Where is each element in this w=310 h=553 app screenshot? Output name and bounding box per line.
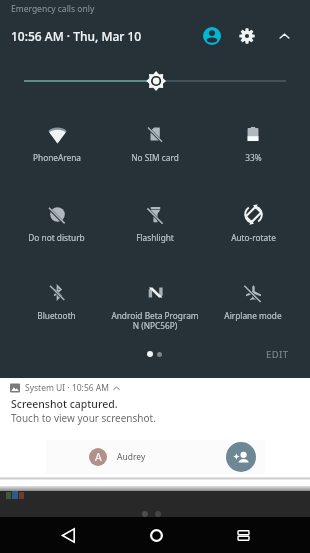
staticText: No SIM card	[131, 152, 179, 163]
button[interactable]: User account	[200, 24, 224, 48]
staticText: System UI · 10:56 AM	[25, 382, 109, 394]
staticText: Emergency calls only	[11, 3, 95, 15]
staticText: Do not disturb	[28, 232, 85, 243]
button[interactable]: Back	[46, 517, 90, 553]
button[interactable]: Recent apps	[221, 517, 265, 553]
staticText: Android Beta Program N (NPC56P)	[111, 310, 199, 332]
button[interactable]: Bluetooth	[7, 268, 106, 330]
staticText: Auto-rotate	[231, 232, 276, 243]
button[interactable]: Android Beta Program N (NPC56P)	[106, 268, 204, 330]
staticText: 10:56 AM · Thu, Mar 10	[11, 28, 142, 44]
button[interactable]: Add guest	[226, 442, 256, 472]
staticText: Touch to view your screenshot.	[11, 411, 156, 425]
button[interactable]: PhoneArena	[7, 110, 106, 172]
button[interactable]: EDIT	[266, 348, 289, 361]
button[interactable]: Brightness	[16, 70, 294, 92]
button[interactable]: Collapse	[272, 24, 296, 48]
staticText: EDIT	[266, 348, 289, 361]
staticText: Audrey	[117, 451, 146, 463]
staticText: A	[95, 450, 102, 464]
staticText: Bluetooth	[37, 310, 76, 321]
button[interactable]: Do not disturb	[7, 190, 106, 252]
button[interactable]: Flashlight	[106, 190, 204, 252]
staticText: Flashlight	[136, 232, 174, 243]
button[interactable]: Auto-rotate	[204, 190, 302, 252]
button[interactable]: Airplane mode	[204, 268, 302, 330]
button[interactable]: A	[46, 440, 265, 474]
button[interactable]: 33%	[204, 110, 302, 172]
staticText: 33%	[245, 152, 262, 163]
button[interactable]: Settings	[235, 24, 259, 48]
button[interactable]: No SIM card	[106, 110, 204, 172]
button[interactable]: System UI · 10:56 AM	[0, 378, 310, 491]
staticText: Airplane mode	[224, 310, 282, 321]
button[interactable]: Home	[134, 517, 178, 553]
staticText: PhoneArena	[33, 152, 81, 163]
staticText: Screenshot captured.	[11, 397, 118, 411]
